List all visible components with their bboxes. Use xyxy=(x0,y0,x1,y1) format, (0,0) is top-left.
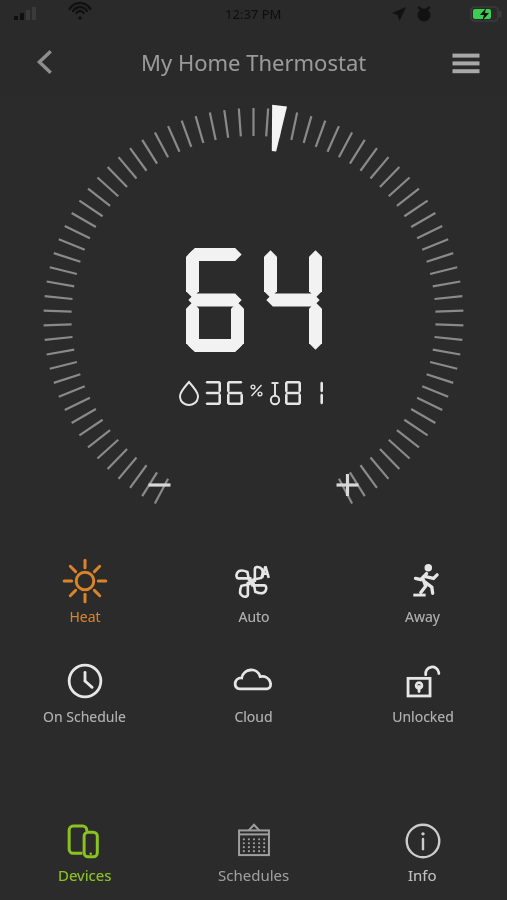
button[interactable]: On Schedule xyxy=(0,642,169,742)
button[interactable]: Away xyxy=(338,542,507,642)
button[interactable]: Unlocked xyxy=(338,642,507,742)
button[interactable]: Schedules xyxy=(169,804,338,900)
button[interactable]: Heat xyxy=(0,542,169,642)
button[interactable]: Info xyxy=(338,804,507,900)
staticText: Heat xyxy=(69,607,101,626)
staticText: Info xyxy=(408,865,437,885)
button[interactable]: Auto xyxy=(169,542,338,642)
staticText: Auto xyxy=(238,607,270,626)
staticText: My Home Thermostat xyxy=(141,47,367,77)
button[interactable]: Menu xyxy=(443,39,489,85)
button[interactable]: Back xyxy=(22,39,68,85)
staticText: Cloud xyxy=(234,707,273,726)
button[interactable]: Cloud xyxy=(169,642,338,742)
staticText: Schedules xyxy=(218,865,290,885)
button[interactable]: Decrease temperature xyxy=(133,461,181,509)
staticText: Devices xyxy=(58,865,112,885)
staticText: Away xyxy=(405,607,440,626)
staticText: On Schedule xyxy=(43,707,126,726)
staticText: Unlocked xyxy=(392,707,454,726)
button[interactable]: Devices xyxy=(0,804,169,900)
button[interactable]: Increase temperature xyxy=(325,461,373,509)
staticText: 12:37 PM xyxy=(225,5,282,23)
